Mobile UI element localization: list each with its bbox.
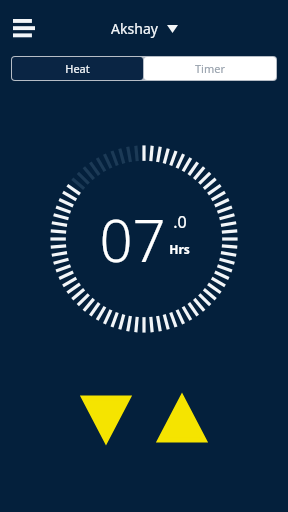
staticText: Heat [65,61,90,76]
button[interactable]: Akshay [111,19,178,38]
staticText: Hrs [169,241,190,257]
button[interactable]: Menu [8,12,40,44]
button[interactable]: Timer [144,57,276,80]
staticText: .0 [173,211,187,233]
staticText: Timer [195,61,225,76]
button[interactable]: Decrease [83,397,129,441]
button[interactable]: Heat [12,57,143,80]
staticText: 07 [99,200,166,279]
button[interactable]: Increase [159,397,205,441]
staticText: Akshay [111,19,158,38]
